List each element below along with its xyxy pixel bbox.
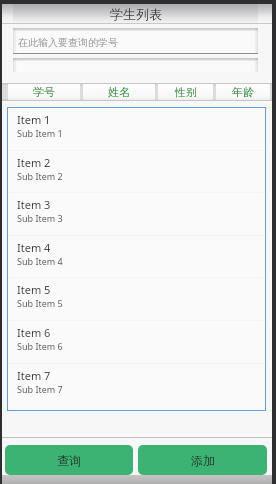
staticText: 性别 [175,85,197,99]
button[interactable]: 性别 [158,84,213,100]
button[interactable]: 查询 [5,445,133,475]
staticText: Item 6 [17,325,51,340]
staticText: 查询 [57,453,81,468]
button[interactable]: Item 3 [8,193,265,236]
button[interactable]: 添加 [138,445,267,475]
staticText: Item 7 [17,368,51,383]
button[interactable]: Item 7 [8,364,265,407]
staticText: Sub Item 2 [17,170,63,182]
button[interactable]: 姓名 [83,84,155,100]
staticText: 姓名 [108,85,130,99]
staticText: Item 3 [17,197,51,212]
button[interactable]: 年龄 [216,84,270,100]
staticText: Sub Item 7 [17,383,63,395]
staticText: Item 5 [17,282,51,297]
button[interactable]: Item 1 [8,108,265,151]
button[interactable]: 学号 [8,84,80,100]
staticText: 学号 [33,85,55,99]
staticText: Sub Item 4 [17,255,63,267]
staticText: Item 1 [17,112,51,127]
button[interactable]: Item 5 [8,278,265,321]
staticText: 在此输入要查询的学号 [18,36,118,49]
staticText: Sub Item 3 [17,212,63,224]
staticText: 添加 [191,453,215,468]
button[interactable]: Item 2 [8,151,265,194]
staticText: Item 4 [17,240,51,255]
staticText: 年龄 [232,85,254,99]
button[interactable]: Item 4 [8,236,265,279]
staticText: Sub Item 6 [17,340,63,352]
staticText: Item 2 [17,155,51,170]
staticText: Sub Item 5 [17,297,63,309]
button[interactable]: Item 6 [8,321,265,364]
staticText: Sub Item 1 [17,127,63,139]
staticText: 学生列表 [110,6,162,22]
